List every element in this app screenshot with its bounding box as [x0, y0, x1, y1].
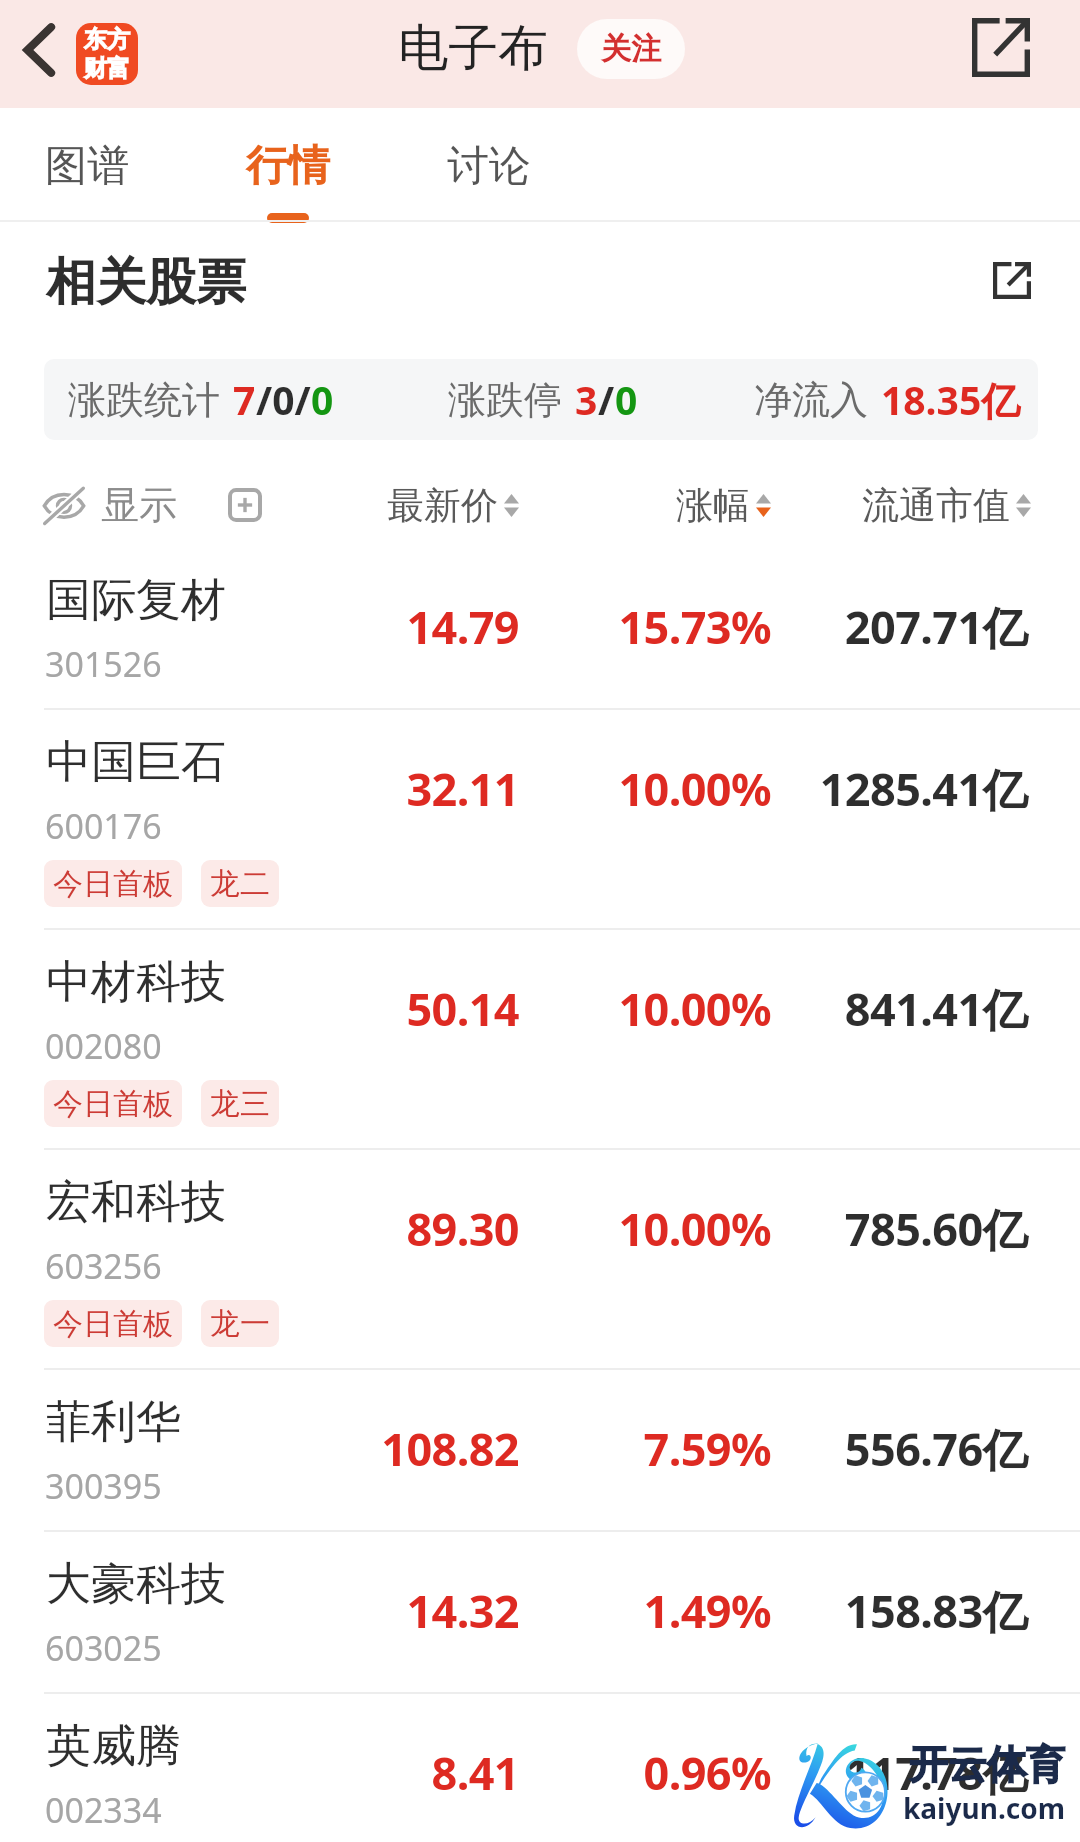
staticText: 301526	[45, 641, 162, 687]
button[interactable]: 流通市值	[631, 466, 1031, 544]
staticText: 最新价	[387, 482, 498, 529]
staticText: 国际复材	[46, 572, 226, 629]
staticText: 讨论	[447, 140, 531, 193]
staticText: 相关股票	[46, 251, 246, 314]
staticText: 关注	[601, 30, 661, 68]
staticText: 108.82	[99, 1418, 519, 1479]
staticText: 1285.41亿	[607, 758, 1027, 819]
button[interactable]: 中材科技	[0, 930, 1080, 1150]
staticText: 涨跌统计	[68, 376, 220, 424]
staticText: 0	[311, 373, 334, 426]
staticText: 15.73%	[351, 596, 771, 657]
staticText: 207.71亿	[607, 596, 1027, 657]
button[interactable]: 英威腾	[0, 1694, 1080, 1842]
staticText: 7.59%	[351, 1418, 771, 1479]
button[interactable]: 中国巨石	[0, 710, 1080, 930]
staticText: 10.00%	[351, 978, 771, 1039]
button[interactable]: 图谱	[29, 108, 145, 222]
staticText: 50.14	[99, 978, 519, 1039]
button[interactable]: 最新价	[119, 466, 519, 544]
staticText: 600176	[45, 803, 162, 849]
staticText: 今日首板	[53, 865, 173, 903]
staticText: 7	[233, 373, 256, 426]
staticText: 603256	[45, 1243, 162, 1289]
staticText: 3	[575, 373, 598, 426]
staticText: 1.49%	[351, 1580, 771, 1641]
staticText: 158.83亿	[607, 1580, 1027, 1641]
staticText: 宏和科技	[46, 1174, 226, 1231]
staticText: 8.41	[99, 1742, 519, 1803]
staticText: 英威腾	[46, 1718, 181, 1775]
staticText: 中材科技	[46, 954, 226, 1011]
staticText: 10.00%	[351, 758, 771, 819]
button[interactable]: East Money	[76, 23, 138, 85]
button[interactable]: Back	[6, 21, 72, 87]
staticText: 涨跌停	[448, 376, 562, 424]
staticText: /0/	[256, 373, 311, 426]
staticText: 今日首板	[53, 1305, 173, 1343]
staticText: 行情	[246, 140, 330, 193]
staticText: 龙一	[210, 1305, 270, 1343]
staticText: 117.78亿	[607, 1742, 1027, 1803]
staticText: 002080	[45, 1023, 162, 1069]
staticText: 300395	[45, 1463, 162, 1509]
staticText: 东方	[84, 25, 130, 54]
staticText: 14.79	[99, 596, 519, 657]
staticText: 财富	[84, 54, 130, 83]
button[interactable]: Expand	[982, 250, 1042, 310]
button[interactable]: 宏和科技	[0, 1150, 1080, 1370]
staticText: /	[598, 373, 615, 426]
staticText: 显示	[101, 481, 177, 529]
button[interactable]: 大豪科技	[0, 1532, 1080, 1694]
staticText: 18.35亿	[881, 373, 1021, 426]
staticText: 菲利华	[46, 1394, 181, 1451]
staticText: 0	[615, 373, 638, 426]
staticText: 14.32	[99, 1580, 519, 1641]
staticText: 556.76亿	[607, 1418, 1027, 1479]
staticText: 0.96%	[351, 1742, 771, 1803]
staticText: 电子布	[398, 17, 548, 80]
staticText: 图谱	[45, 140, 129, 193]
staticText: 002334	[45, 1787, 162, 1833]
button[interactable]: 显示	[43, 481, 177, 529]
staticText: 流通市值	[862, 482, 1010, 529]
staticText: 841.41亿	[607, 978, 1027, 1039]
staticText: 大豪科技	[46, 1556, 226, 1613]
button[interactable]: 关注	[577, 19, 685, 79]
staticText: 89.30	[99, 1198, 519, 1259]
button[interactable]: 行情	[230, 108, 346, 222]
staticText: 今日首板	[53, 1085, 173, 1123]
staticText: 785.60亿	[607, 1198, 1027, 1259]
button[interactable]: 菲利华	[0, 1370, 1080, 1532]
staticText: 涨幅	[676, 482, 750, 529]
staticText: 净流入	[754, 376, 868, 424]
button[interactable]: 国际复材	[0, 548, 1080, 710]
button[interactable]: Add column	[228, 488, 262, 522]
staticText: 32.11	[99, 758, 519, 819]
staticText: 10.00%	[351, 1198, 771, 1259]
staticText: kaiyun.com	[865, 1789, 1065, 1827]
staticText: 龙二	[210, 865, 270, 903]
button[interactable]: Share	[963, 9, 1039, 85]
staticText: 龙三	[210, 1085, 270, 1123]
staticText: 中国巨石	[46, 734, 226, 791]
button[interactable]: 涨幅	[371, 466, 771, 544]
button[interactable]: 讨论	[431, 108, 547, 222]
staticText: 开云体育	[865, 1740, 1065, 1789]
staticText: 603025	[45, 1625, 162, 1671]
